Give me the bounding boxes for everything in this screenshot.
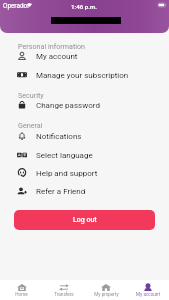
button[interactable]: My account (127, 280, 169, 300)
button[interactable]: My account (0, 48, 169, 67)
staticText: General (18, 121, 43, 129)
staticText: My property (94, 292, 119, 297)
staticText: 1:46 p.m. (71, 3, 98, 10)
staticText: Security (18, 91, 44, 99)
staticText: Manage your subscription (36, 71, 129, 80)
staticText: Notifications (36, 132, 82, 141)
button[interactable]: Home (0, 280, 43, 300)
button[interactable]: Notifications (0, 128, 169, 147)
staticText: Select language (36, 151, 93, 160)
staticText: Refer a Friend (36, 187, 86, 196)
staticText: Personal information (18, 42, 86, 50)
staticText: Home (15, 292, 28, 297)
button[interactable]: Manage your subscription (0, 67, 169, 86)
button[interactable]: Refer a Friend (0, 183, 169, 202)
button[interactable]: Log out (14, 210, 155, 230)
button[interactable]: My property (85, 280, 127, 300)
staticText: Help and support (36, 169, 98, 178)
button[interactable]: Change password (0, 97, 169, 116)
staticText: Transfers (54, 292, 74, 297)
button[interactable]: Select language (0, 147, 169, 166)
button[interactable]: Transfers (43, 280, 85, 300)
staticText: Change password (36, 101, 100, 110)
staticText: My account (136, 292, 160, 297)
staticText: My account (36, 52, 78, 61)
staticText: Operador (3, 2, 30, 10)
button[interactable]: Help and support (0, 165, 169, 184)
staticText: Log out (73, 216, 97, 224)
